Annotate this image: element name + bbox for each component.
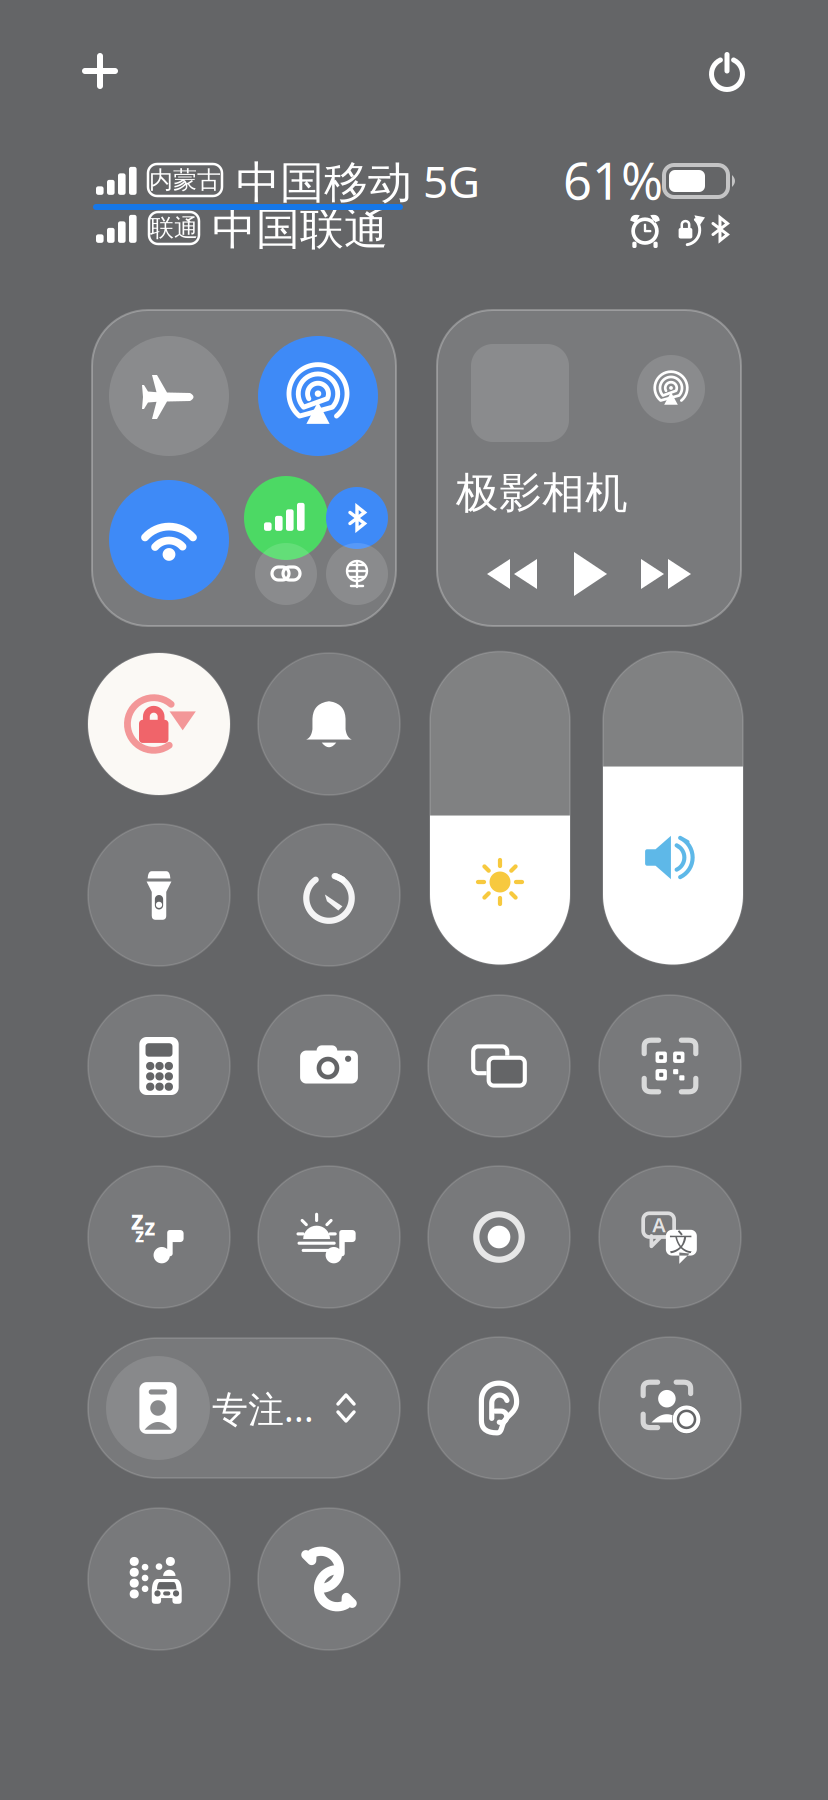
staticText: 联通 bbox=[150, 213, 198, 243]
staticText: 专注模式 bbox=[212, 1384, 334, 1432]
staticText: 61% bbox=[563, 146, 663, 214]
button[interactable]: Previous bbox=[476, 542, 548, 606]
button[interactable]: Flashlight bbox=[88, 824, 230, 966]
button[interactable]: Car Mode bbox=[88, 1508, 230, 1650]
button[interactable]: Code Scanner bbox=[599, 995, 741, 1137]
button[interactable]: AirPlay bbox=[637, 355, 705, 423]
staticText: 中国联通 bbox=[212, 202, 388, 256]
button[interactable]: Sleep Sounds bbox=[88, 1166, 230, 1308]
button[interactable]: Rotation Lock bbox=[88, 653, 230, 795]
button[interactable]: Power Off bbox=[689, 34, 765, 110]
button[interactable]: AirDrop bbox=[258, 336, 378, 456]
button[interactable]: Volume bbox=[603, 651, 743, 964]
button[interactable]: Airplane Mode bbox=[109, 336, 229, 456]
button[interactable]: Timer bbox=[258, 824, 400, 966]
button[interactable]: Personal Hotspot bbox=[255, 543, 317, 605]
staticText: 极影相机 bbox=[456, 467, 628, 519]
staticText: 中国移动 5G bbox=[236, 152, 480, 210]
button[interactable]: Camera bbox=[258, 995, 400, 1137]
button[interactable]: 专注模式 bbox=[88, 1338, 400, 1478]
staticText: z bbox=[135, 1222, 144, 1247]
button[interactable]: People Detection bbox=[599, 1337, 741, 1479]
staticText: z bbox=[131, 1202, 144, 1237]
button[interactable]: Cellular Data bbox=[244, 476, 328, 560]
staticText: 内蒙古 bbox=[149, 165, 221, 195]
button[interactable]: Wake Sounds bbox=[258, 1166, 400, 1308]
button[interactable]: VPN bbox=[326, 543, 388, 605]
staticText: 文 bbox=[669, 1227, 693, 1257]
button[interactable]: Wi-Fi bbox=[109, 480, 229, 600]
button[interactable]: Brightness bbox=[430, 651, 570, 964]
button[interactable]: Hearing bbox=[428, 1337, 570, 1479]
button[interactable]: Play bbox=[553, 542, 625, 606]
button[interactable]: Shazam bbox=[258, 1508, 400, 1650]
button[interactable]: Add a Control bbox=[62, 33, 138, 109]
button[interactable]: Calculator bbox=[88, 995, 230, 1137]
button[interactable]: Silent Mode bbox=[258, 653, 400, 795]
button[interactable]: Bluetooth bbox=[326, 487, 388, 549]
button[interactable]: Screen Mirroring bbox=[428, 995, 570, 1137]
button[interactable]: Next bbox=[630, 542, 702, 606]
staticText: A bbox=[652, 1211, 665, 1238]
button[interactable]: Translate bbox=[599, 1166, 741, 1308]
button[interactable]: Screen Recording bbox=[428, 1166, 570, 1308]
staticText: z bbox=[144, 1212, 155, 1242]
